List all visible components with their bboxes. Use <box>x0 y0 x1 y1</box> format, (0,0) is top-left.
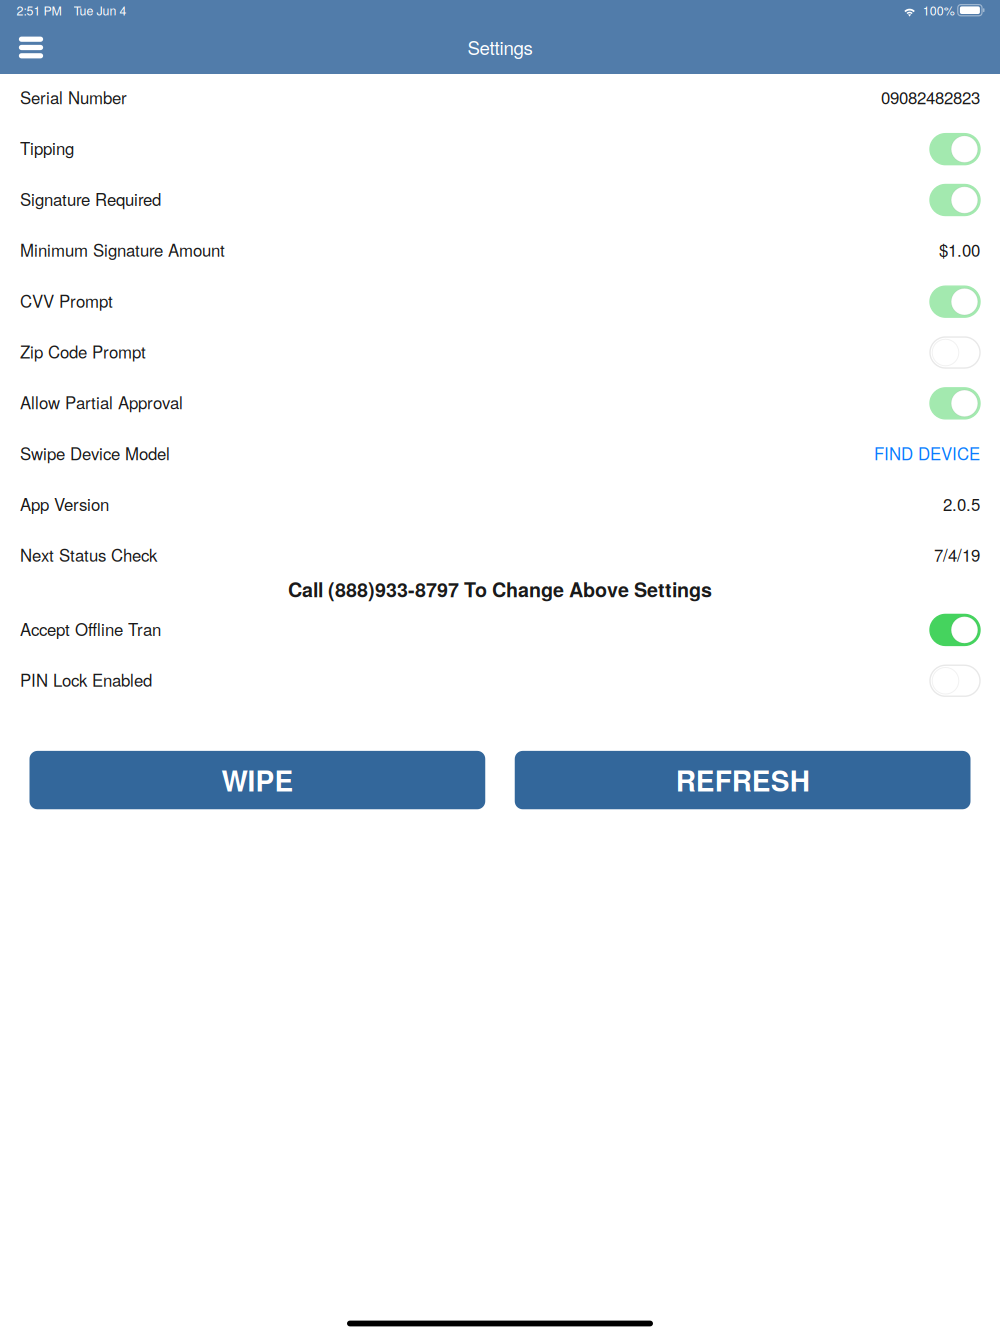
button[interactable]: Swipe Device Model <box>0 427 1000 478</box>
button[interactable]: Menu <box>7 23 55 74</box>
staticText: 100% <box>923 1 955 19</box>
staticText: 2.0.5 <box>943 492 980 516</box>
staticText: CVV Prompt <box>20 288 113 312</box>
staticText: Signature Required <box>20 187 161 211</box>
button[interactable]: Accept Offline Tran <box>0 603 1000 654</box>
staticText: App Version <box>20 492 109 516</box>
button[interactable]: CVV Prompt <box>0 275 1000 326</box>
staticText: Allow Partial Approval <box>20 390 183 414</box>
staticText: Tipping <box>20 136 74 160</box>
staticText: REFRESH <box>676 760 810 800</box>
staticText: 7/4/19 <box>934 543 980 567</box>
staticText: $1.00 <box>939 237 980 262</box>
button[interactable]: Signature Required <box>0 173 1000 224</box>
staticText: Settings <box>467 33 532 60</box>
staticText: Call (888)933-8797 To Change Above Setti… <box>288 575 712 598</box>
staticText: 09082482823 <box>881 85 980 109</box>
staticText: Serial Number <box>20 85 127 109</box>
staticText: 2:51 PM <box>16 1 61 19</box>
staticText: Tue Jun 4 <box>73 1 126 19</box>
staticText: Minimum Signature Amount <box>20 237 225 262</box>
staticText: FIND DEVICE <box>874 441 980 465</box>
button[interactable]: Allow Partial Approval <box>0 377 1000 427</box>
staticText: Accept Offline Tran <box>20 617 161 641</box>
staticText: Swipe Device Model <box>20 441 170 465</box>
button[interactable]: REFRESH <box>515 751 971 809</box>
button[interactable]: PIN Lock Enabled <box>0 654 1000 705</box>
staticText: Zip Code Prompt <box>20 339 146 363</box>
staticText: WIPE <box>221 760 293 800</box>
staticText: Next Status Check <box>20 543 157 567</box>
button[interactable]: Tipping <box>0 122 1000 173</box>
staticText: PIN Lock Enabled <box>20 667 152 691</box>
button[interactable]: WIPE <box>29 751 485 809</box>
button[interactable]: Zip Code Prompt <box>0 326 1000 377</box>
